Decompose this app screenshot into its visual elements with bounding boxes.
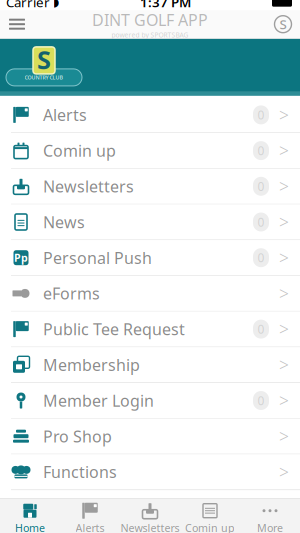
staticText: S [37,43,51,76]
staticText: 0 [257,107,264,123]
staticText: > [279,210,289,233]
button[interactable]: Sportsbag [266,10,300,38]
button[interactable]: eForms [0,276,300,312]
button[interactable]: Functions [0,454,300,490]
button[interactable]: Comin up [0,133,300,169]
button[interactable]: Pro Shop [0,419,300,454]
staticText: COUNTRY CLUB [24,74,63,81]
staticText: > [279,460,289,483]
staticText: > [279,282,289,305]
staticText: Pro Shop [43,426,112,447]
staticText: Home [15,521,45,533]
staticText: > [279,425,289,448]
button[interactable]: Newsletters [0,169,300,204]
staticText: Public Tee Request [43,318,185,340]
staticText: > [279,318,289,341]
staticText: 0 [257,250,264,266]
staticText: Functions [43,461,117,482]
button[interactable]: Menu [0,10,34,38]
staticText: Alerts [75,521,104,533]
button[interactable]: More [240,500,300,533]
staticText: Newsletters [43,176,134,197]
staticText: Alerts [43,104,87,125]
staticText: Membership [43,354,140,375]
staticText: > [279,139,289,162]
button[interactable]: Alerts [0,97,300,133]
staticText: Comin up [43,140,116,161]
staticText: News [43,211,85,233]
staticText: S [279,15,286,33]
button[interactable]: Newsletters [120,500,180,533]
button[interactable]: Membership [0,347,300,383]
staticText: eForms [43,283,100,304]
staticText: Pp [14,251,28,265]
staticText: > [279,389,289,412]
staticText: 0 [257,214,264,230]
staticText: More [257,521,283,533]
button[interactable]: Home [0,500,60,533]
staticText: > [279,175,289,198]
staticText: > [279,103,289,126]
staticText: DINT GOLF APP [92,9,208,30]
staticText: 0 [257,143,264,158]
button[interactable]: Pp [0,240,300,276]
button[interactable]: News [0,204,300,240]
staticText: ◗ [53,0,59,9]
staticText: Member Login [43,390,154,411]
staticText: Newsletters [120,521,179,533]
staticText: Personal Push [43,247,152,268]
staticText: 0 [257,178,264,194]
staticText: powered by SPORTSBAG [111,30,188,39]
staticText: 1:37 PM [140,0,191,11]
staticText: 0 [257,321,264,337]
staticText: > [279,246,289,269]
button[interactable]: Public Tee Request [0,312,300,347]
staticText: > [279,353,289,376]
button[interactable]: Alerts [60,500,120,533]
staticText: Carrier [6,0,50,11]
staticText: 0 [257,392,264,408]
button[interactable]: Comin up [180,500,240,533]
button[interactable]: Member Login [0,383,300,419]
staticText: Comin up [185,521,235,533]
